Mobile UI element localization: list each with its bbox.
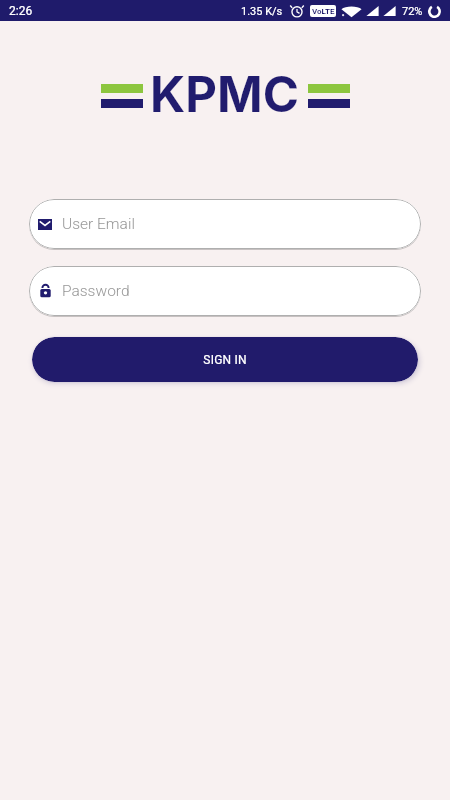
staticText: KPMC: [150, 65, 299, 113]
button[interactable]: SIGN IN: [32, 337, 418, 382]
staticText: Password: [62, 282, 130, 300]
staticText: SIGN IN: [203, 353, 247, 367]
staticText: 1.35 K/s: [241, 5, 283, 18]
button[interactable]: User Email: [29, 199, 421, 249]
button[interactable]: Password: [29, 266, 421, 316]
staticText: VoLTE: [312, 7, 335, 16]
staticText: 2:26: [9, 4, 33, 18]
staticText: User Email: [62, 215, 135, 233]
staticText: 72%: [402, 5, 423, 18]
